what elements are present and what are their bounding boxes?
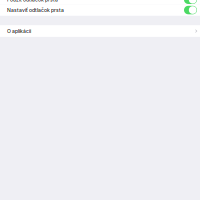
staticText: Použiť odtlačok prsta <box>7 0 58 3</box>
button[interactable]: Nastaviť odtlačok prsta <box>0 4 200 16</box>
staticText: O aplikácii <box>7 28 31 34</box>
button[interactable]: O aplikácii <box>0 25 200 37</box>
button[interactable]: Použiť odtlačok prsta <box>0 0 200 4</box>
staticText: Nastaviť odtlačok prsta <box>7 7 64 13</box>
